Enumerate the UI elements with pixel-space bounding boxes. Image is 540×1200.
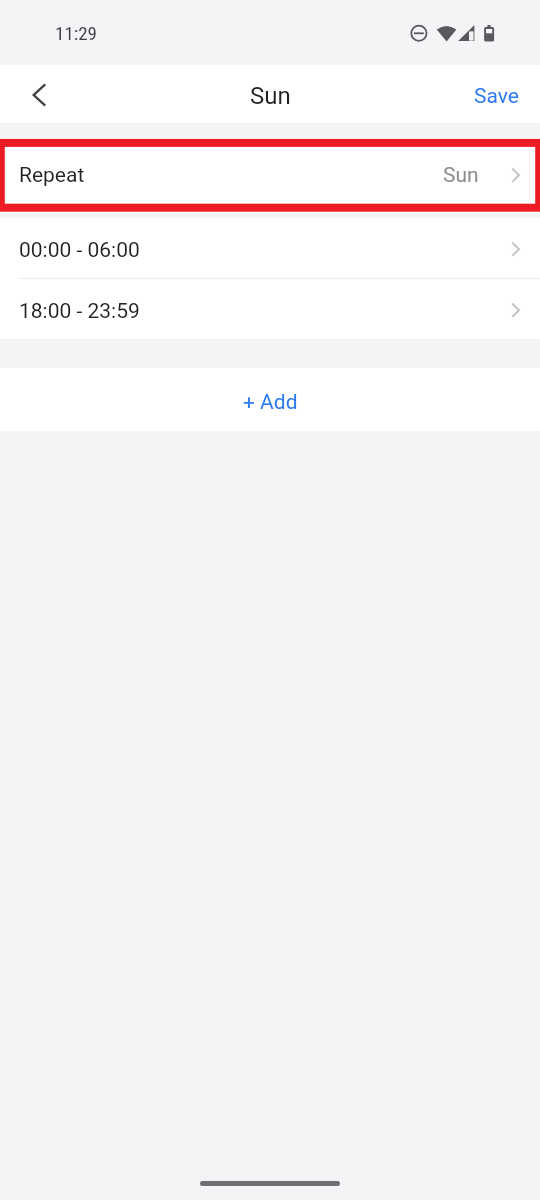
staticText: Save <box>474 84 519 109</box>
staticText: Sun <box>443 163 479 188</box>
button[interactable]: Back <box>15 70 63 118</box>
staticText: Repeat <box>19 163 85 188</box>
staticText: 00:00 - 06:00 <box>19 238 140 263</box>
staticText: + Add <box>243 390 298 415</box>
staticText: 11:29 <box>55 22 97 44</box>
staticText: Sun <box>250 82 291 110</box>
button[interactable]: Save <box>453 68 540 121</box>
staticText: 18:00 - 23:59 <box>19 299 140 324</box>
button[interactable]: 18:00 - 23:59 <box>0 279 540 339</box>
button[interactable]: + Add <box>0 368 540 431</box>
button[interactable]: 00:00 - 06:00 <box>0 218 540 278</box>
button[interactable]: Repeat <box>0 138 540 213</box>
